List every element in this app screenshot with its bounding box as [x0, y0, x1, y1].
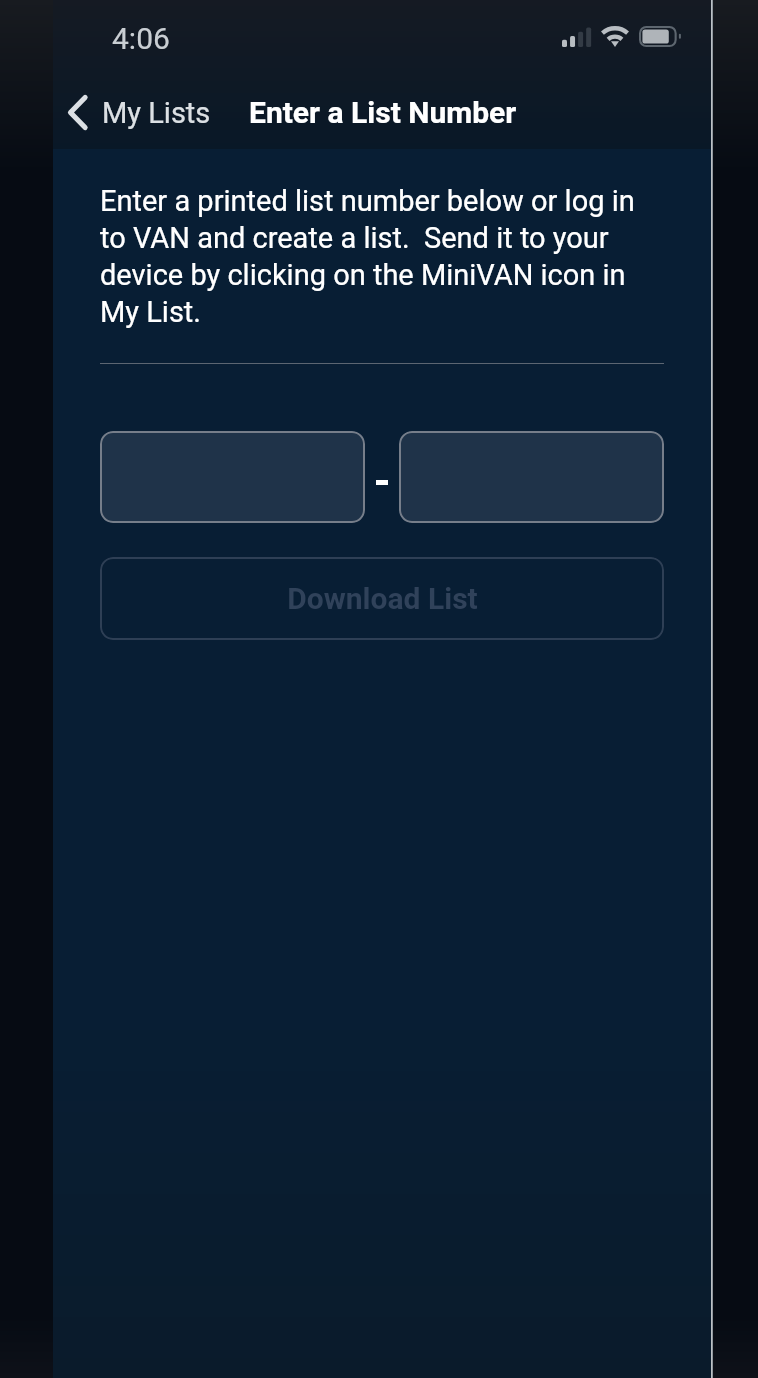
other: Battery: [639, 26, 681, 47]
button[interactable]: Download List: [100, 557, 664, 640]
staticText: Enter a List Number: [249, 95, 517, 130]
other: Back to My Lists: [68, 95, 87, 130]
staticText: 4:06: [112, 21, 170, 56]
button[interactable]: Back to My Lists: [53, 87, 225, 138]
staticText: Enter a printed list number below or log…: [100, 184, 648, 329]
staticText: My Lists: [102, 96, 211, 130]
other: Wi-Fi: [601, 26, 629, 47]
button[interactable]: List number suffix: [399, 431, 664, 523]
other: Cellular signal: [562, 27, 592, 47]
button[interactable]: List number prefix: [100, 431, 365, 523]
staticText: Download List: [287, 581, 478, 616]
